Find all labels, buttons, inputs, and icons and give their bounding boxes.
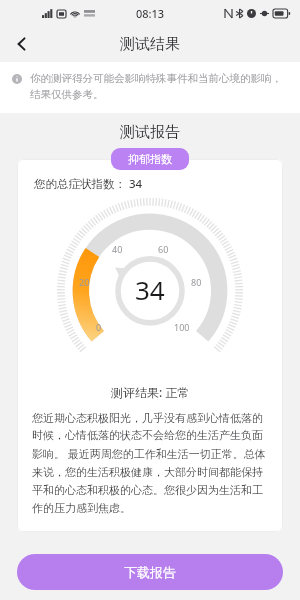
staticText: 20 [79,276,90,288]
staticText: 80 [191,276,202,288]
button[interactable]: 抑郁指数 [111,148,189,170]
staticText: 下载报告 [124,564,176,580]
staticText: 0 [96,321,102,333]
staticText: 您的总症状指数： 34 [34,176,143,192]
staticText: 你的测评得分可能会影响特殊事件和当前心境的影响，结果仅供参考。 [30,72,284,101]
staticText: 08:13 [136,6,165,21]
staticText: 100 [174,321,190,333]
staticText: 40 [112,243,123,255]
staticText: 60 [158,243,169,255]
staticText: 测试结果 [120,35,180,54]
staticText: 抑郁指数 [128,152,172,166]
staticText: 您近期心态积极阳光，几乎没有感到心情低落的时候，心情低落的状态不会给您的生活产生… [32,411,268,516]
button[interactable]: Back [6,28,38,60]
staticText: 测试报告 [120,123,180,142]
button[interactable]: 下载报告 [17,554,283,590]
staticText: 测评结果: 正常 [111,384,190,400]
staticText: 34 [135,272,165,307]
